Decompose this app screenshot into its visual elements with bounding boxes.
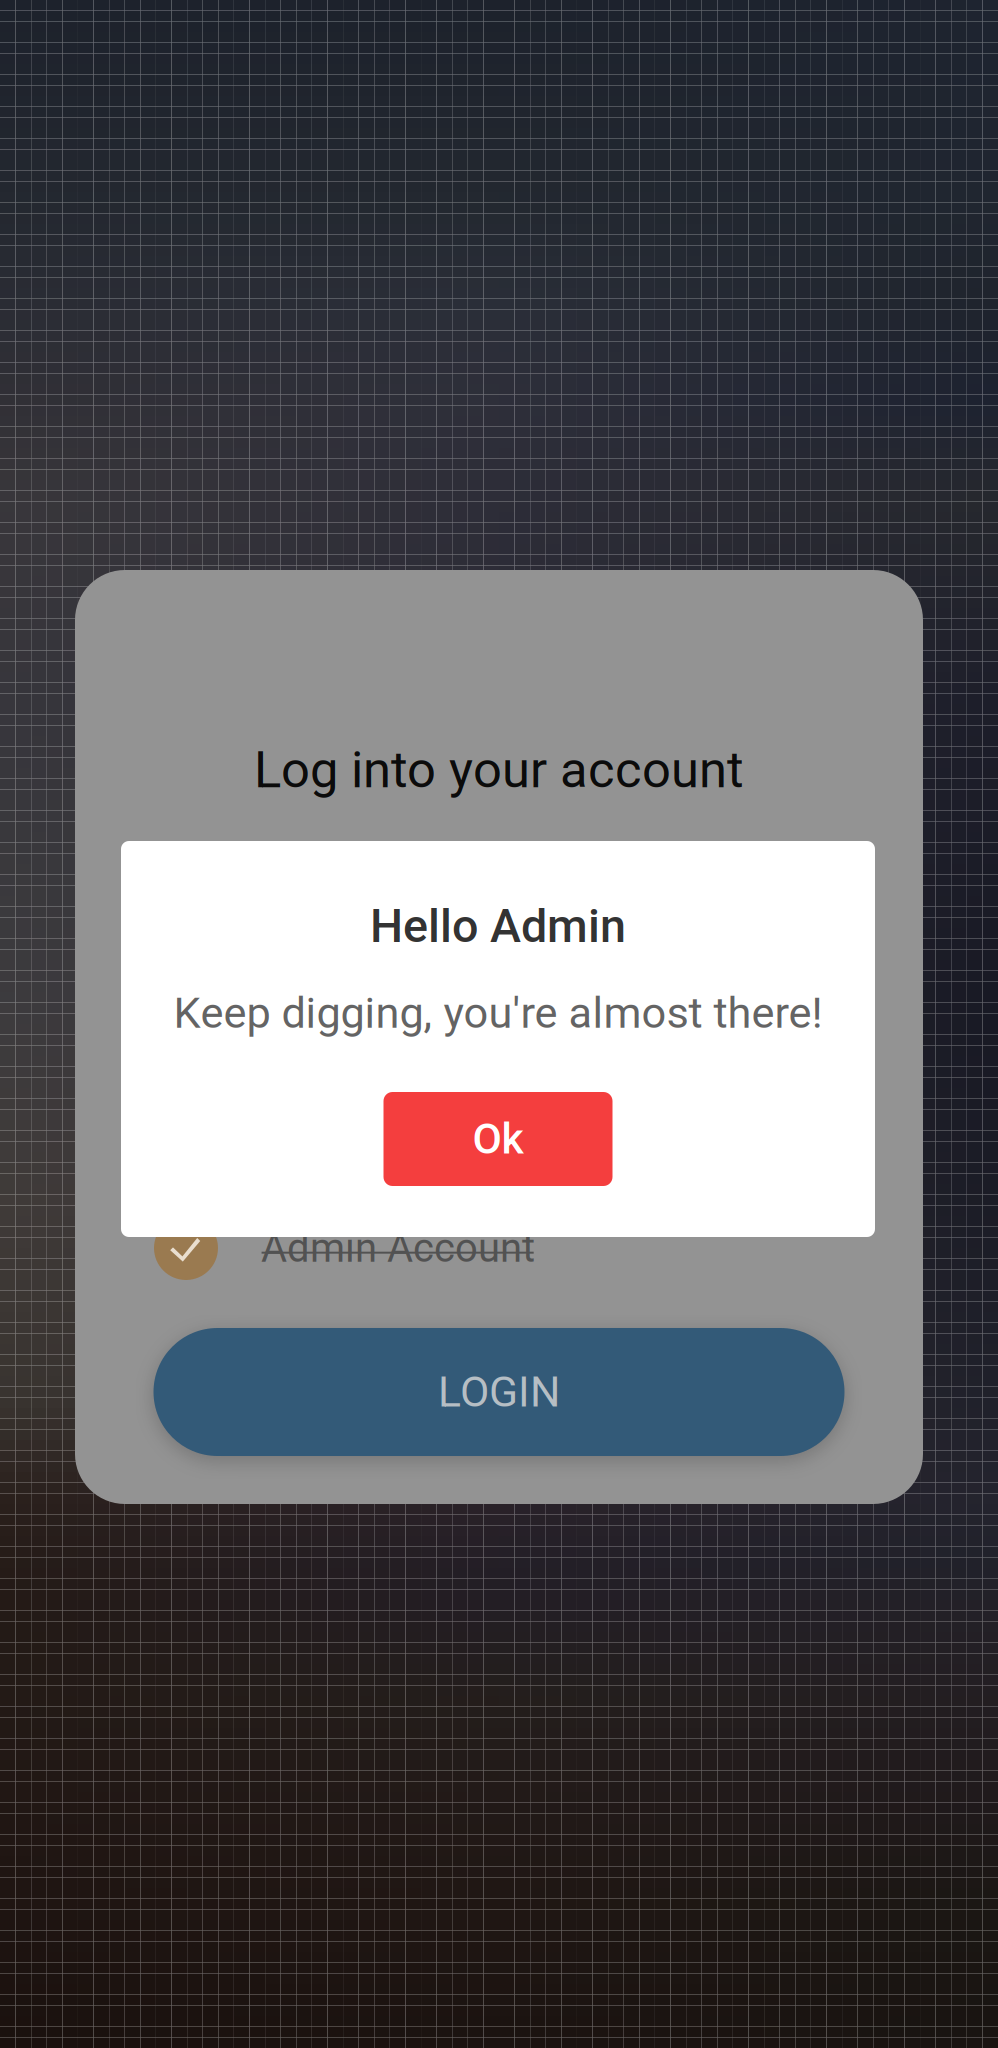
button[interactable]: Admin Account [154,1208,844,1288]
staticText: Log into your account [254,740,744,800]
staticText: Ok [472,1114,523,1164]
button[interactable]: LOGIN [153,1328,844,1456]
staticText: Hello Admin [370,899,626,953]
staticText: Admin Account [261,1225,535,1271]
button[interactable]: Ok [383,1092,612,1186]
staticText: LOGIN [438,1367,560,1417]
staticText: Keep digging, you're almost there! [173,988,822,1038]
